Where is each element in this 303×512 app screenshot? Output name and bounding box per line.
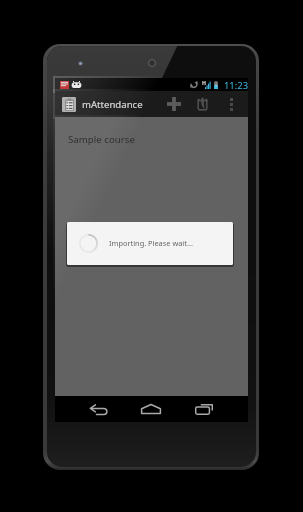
- button[interactable]: Add course: [160, 91, 188, 117]
- button[interactable]: mAttendance: [55, 97, 147, 112]
- button[interactable]: Home: [138, 396, 164, 422]
- staticText: 11:23: [224, 79, 249, 92]
- staticText: Sample course: [68, 133, 135, 146]
- button[interactable]: Recent apps: [191, 396, 217, 422]
- button[interactable]: Back: [86, 396, 112, 422]
- button[interactable]: More options: [217, 91, 245, 117]
- button[interactable]: Import: [188, 91, 217, 117]
- staticText: mAttendance: [82, 98, 143, 111]
- staticText: H: [202, 79, 206, 86]
- staticText: Importing. Please wait...: [109, 238, 193, 248]
